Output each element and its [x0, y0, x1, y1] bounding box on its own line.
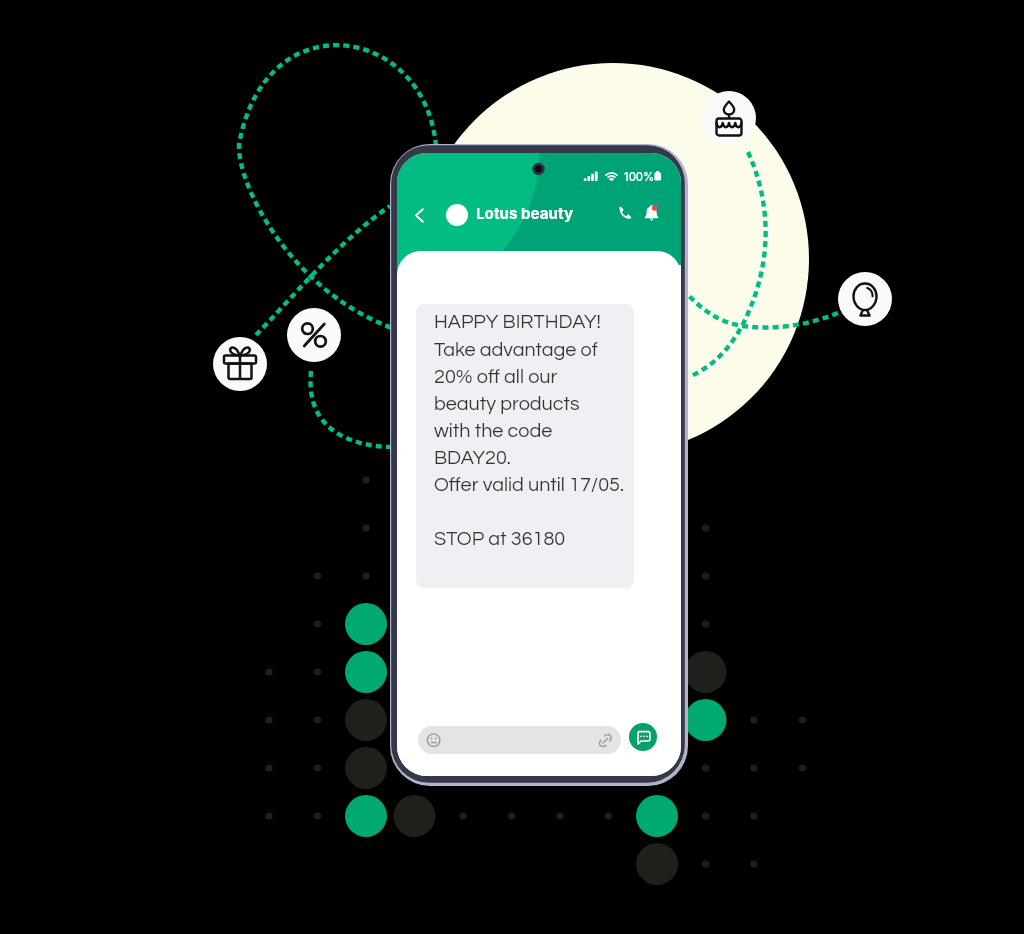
button[interactable]: Notifications: [641, 202, 665, 226]
staticText: HAPPY BIRTHDAY! Take advantage of 20% of…: [434, 312, 624, 549]
staticText: Lotus beauty: [476, 204, 574, 222]
button[interactable]: Back: [409, 203, 433, 227]
staticText: 100%: [624, 170, 655, 184]
button[interactable]: New message: [629, 723, 657, 751]
button[interactable]: Call: [613, 202, 637, 226]
button[interactable]: Message input: [418, 726, 621, 754]
